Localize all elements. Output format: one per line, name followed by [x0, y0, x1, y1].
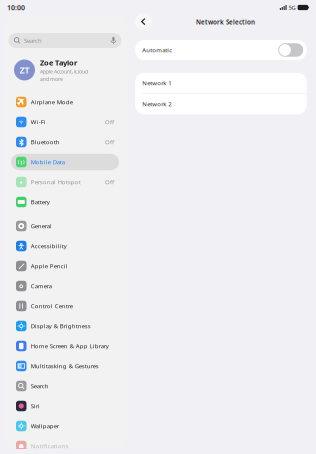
- staticText: Accessibility: [31, 242, 67, 250]
- button[interactable]: Camera: [11, 276, 119, 296]
- staticText: 10:00: [7, 3, 25, 12]
- staticText: Siri: [31, 402, 40, 410]
- button[interactable]: Search: [8, 33, 121, 48]
- button[interactable]: Network 2: [135, 94, 307, 114]
- staticText: Wallpaper: [31, 422, 59, 430]
- button[interactable]: Accessibility: [11, 236, 119, 256]
- staticText: Personal Hotspot: [31, 178, 81, 186]
- staticText: 5G: [289, 3, 296, 11]
- staticText: Camera: [31, 282, 52, 290]
- staticText: Apple Pencil: [31, 262, 68, 270]
- button[interactable]: General: [11, 216, 119, 236]
- staticText: General: [31, 222, 52, 230]
- staticText: Off: [105, 178, 114, 186]
- staticText: and more: [40, 76, 63, 82]
- button[interactable]: Notifications: [11, 436, 119, 454]
- button[interactable]: Automatic: [135, 40, 307, 60]
- staticText: Off: [105, 138, 114, 146]
- staticText: Apple Account, iCloud: [40, 68, 88, 75]
- button[interactable]: Mobile Data: [11, 152, 119, 172]
- staticText: Off: [105, 118, 114, 126]
- staticText: Multitasking & Gestures: [31, 362, 99, 370]
- button[interactable]: Network 1: [135, 73, 307, 93]
- staticText: Search: [31, 382, 49, 390]
- button[interactable]: Apple Pencil: [11, 256, 119, 276]
- button[interactable]: Search: [11, 376, 119, 396]
- button[interactable]: Personal Hotspot: [11, 172, 119, 192]
- button[interactable]: Siri: [11, 396, 119, 416]
- button[interactable]: Control Centre: [11, 296, 119, 316]
- staticText: Search: [24, 36, 42, 45]
- staticText: ZT: [19, 64, 29, 76]
- button[interactable]: Back: [135, 13, 152, 30]
- button[interactable]: Bluetooth: [11, 132, 119, 152]
- staticText: Control Centre: [31, 302, 73, 310]
- button[interactable]: Battery: [11, 192, 119, 212]
- staticText: Airplane Mode: [31, 98, 73, 106]
- staticText: Network 2: [142, 100, 171, 108]
- button[interactable]: Home Screen & App Library: [11, 336, 119, 356]
- button[interactable]: Airplane Mode: [11, 92, 119, 112]
- staticText: Battery: [31, 198, 50, 206]
- button[interactable]: Display & Brightness: [11, 316, 119, 336]
- staticText: Notifications: [31, 442, 69, 450]
- button[interactable]: Wi-Fi: [11, 112, 119, 132]
- staticText: Network Selection: [196, 18, 255, 26]
- button[interactable]: ZT: [8, 57, 122, 83]
- staticText: Home Screen & App Library: [31, 342, 109, 350]
- staticText: Wi-Fi: [31, 118, 46, 126]
- button[interactable]: Multitasking & Gestures: [11, 356, 119, 376]
- staticText: Mobile Data: [31, 158, 65, 166]
- button[interactable]: Wallpaper: [11, 416, 119, 436]
- staticText: Zoe Taylor: [40, 57, 77, 68]
- staticText: Network 1: [142, 79, 171, 87]
- staticText: Bluetooth: [31, 138, 60, 146]
- staticText: Automatic: [142, 46, 172, 54]
- staticText: Display & Brightness: [31, 322, 91, 330]
